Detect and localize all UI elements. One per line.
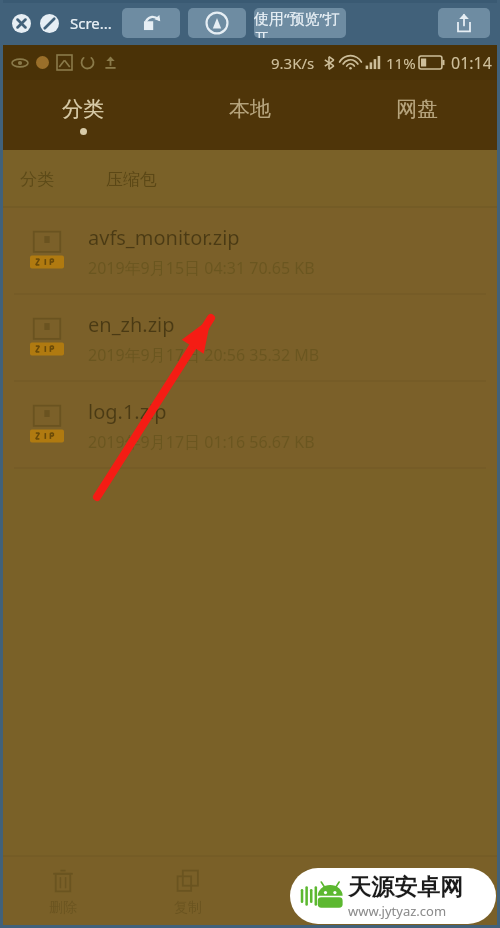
button[interactable]: log.1.zip (0, 382, 500, 469)
staticText: 本地 (229, 96, 271, 122)
staticText: 使用“预览”打开 (254, 8, 346, 38)
button[interactable]: avfs_monitor.zip (0, 208, 500, 295)
staticText: 删除 (49, 899, 77, 917)
button[interactable]: 使用“预览”打开 (254, 8, 346, 38)
staticText: www.jytyaz.com (348, 902, 447, 920)
button[interactable]: 复制 (125, 856, 250, 928)
staticText: 更多 (424, 899, 452, 917)
button[interactable]: 更多 (375, 856, 500, 928)
staticText: 分类 (62, 96, 104, 122)
staticText: 天源安卓网 (348, 873, 463, 902)
staticText: 网盘 (396, 96, 438, 122)
button[interactable]: Markup tool (188, 8, 246, 38)
staticText: 2019年9月17日 20:56 35.32 MB (88, 344, 320, 366)
button[interactable]: Close (10, 12, 32, 34)
button[interactable]: 本地 (166, 80, 333, 150)
button[interactable]: 分类 (0, 80, 166, 150)
button[interactable]: 分类 (18, 163, 56, 196)
staticText: 9.3K/s (271, 53, 315, 73)
staticText: 11% (386, 53, 416, 73)
staticText: en_zh.zip (88, 311, 175, 338)
staticText: avfs_monitor.zip (88, 224, 240, 251)
button[interactable]: Share (438, 8, 490, 38)
button[interactable]: en_zh.zip (0, 295, 500, 382)
staticText: 2019年9月15日 04:31 70.65 KB (88, 257, 315, 279)
staticText: 压缩包 (106, 169, 157, 190)
button[interactable]: 压缩包 (104, 163, 159, 196)
staticText: 剪贴 (299, 899, 327, 917)
button[interactable]: Rotate (122, 8, 180, 38)
staticText: Scre... (70, 13, 112, 33)
button[interactable]: Markup (38, 12, 60, 34)
staticText: 01:14 (451, 52, 492, 74)
button[interactable]: 删除 (0, 856, 125, 928)
staticText: 分类 (20, 169, 54, 190)
staticText: 2019年9月17日 01:16 56.67 KB (88, 431, 315, 453)
button[interactable]: 网盘 (333, 80, 500, 150)
staticText: 复制 (174, 899, 202, 917)
staticText: log.1.zip (88, 398, 167, 425)
button[interactable]: 剪贴 (250, 856, 375, 928)
